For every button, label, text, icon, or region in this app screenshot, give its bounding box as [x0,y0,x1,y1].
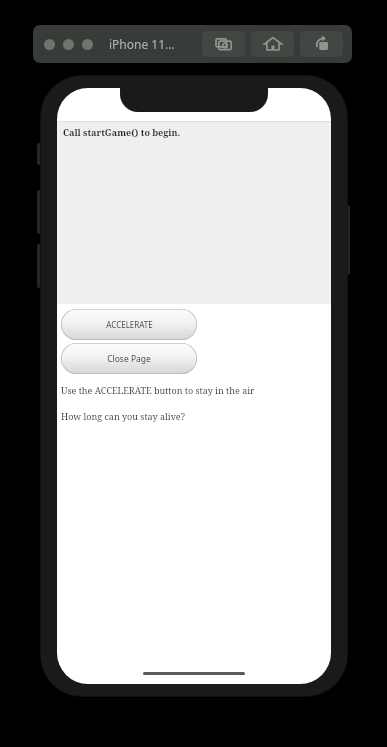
button[interactable]: Home [251,31,294,57]
staticText: How long can you stay alive? [61,410,185,422]
staticText: Use the ACCELERATE button to stay in the… [61,384,255,396]
staticText: Close Page [107,353,151,365]
staticText: iPhone 11… [109,36,175,52]
button[interactable]: Minimize window [63,39,74,50]
button[interactable]: Maximize window [82,39,93,50]
button[interactable]: ACCELERATE [61,309,197,340]
button[interactable]: Screenshot [202,31,245,57]
button[interactable]: Close Page [61,343,197,374]
staticText: ACCELERATE [106,319,153,330]
button[interactable]: Share [300,31,343,57]
staticText: Call startGame() to begin. [63,126,181,138]
button[interactable]: Close window [44,39,55,50]
